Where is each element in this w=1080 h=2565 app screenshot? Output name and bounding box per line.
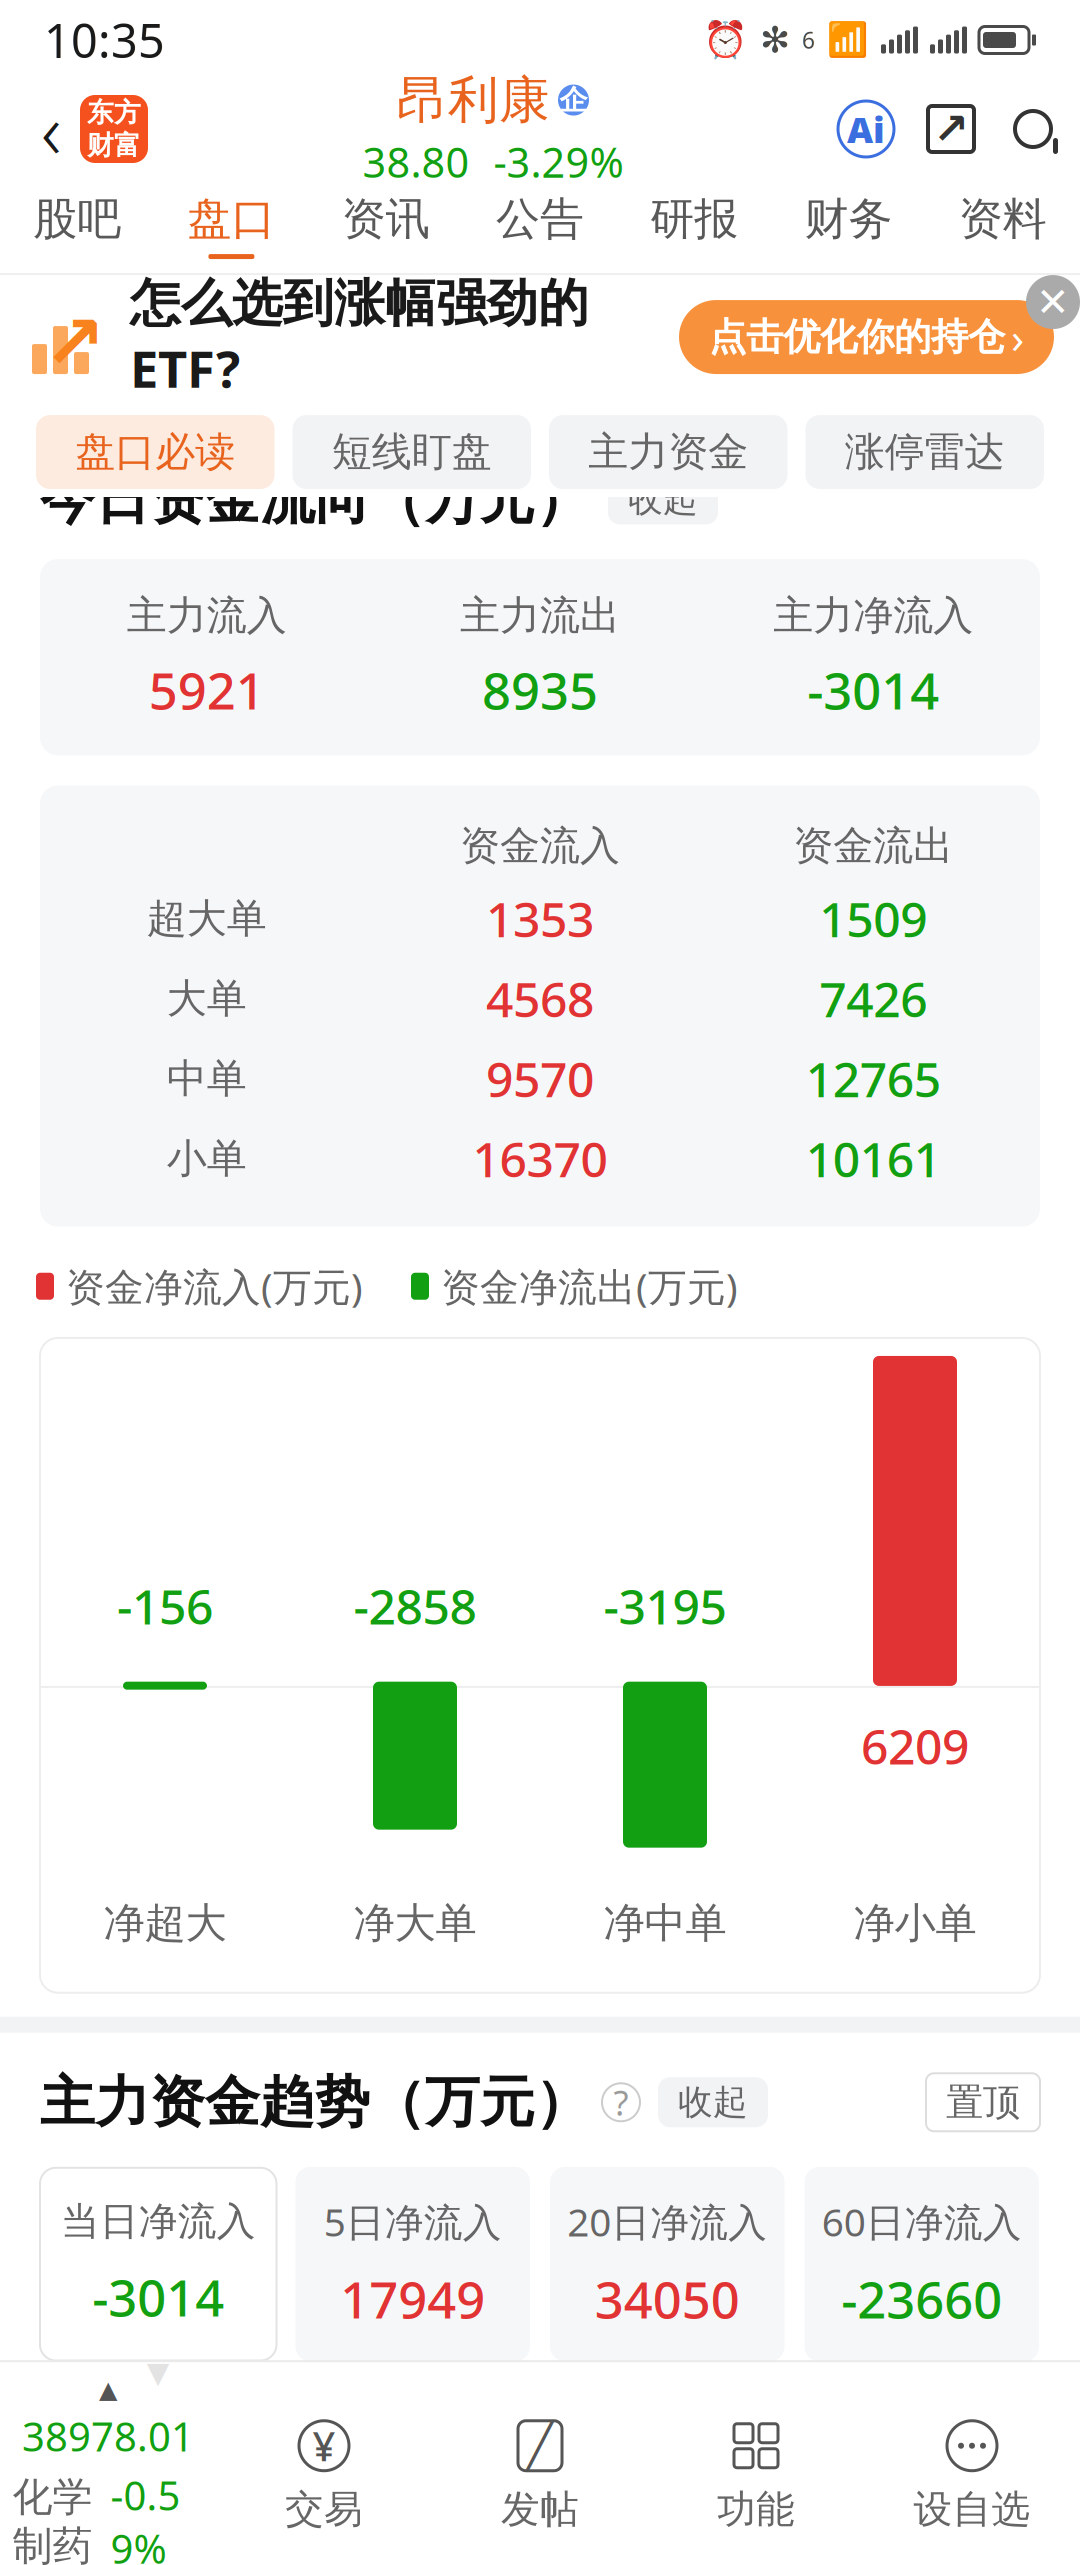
staticText (409, 2355, 417, 2394)
staticText: ▲ (99, 2376, 117, 2403)
staticText: 资金净流出(万元) (441, 1261, 738, 1312)
staticText: 4568 (486, 967, 594, 1030)
staticText: 资讯 (342, 192, 430, 246)
staticText: 当日净流入 (61, 2198, 256, 2245)
staticText: ▼ (147, 2356, 170, 2389)
staticText: 大单 (167, 974, 247, 1023)
staticText: ✻ (760, 20, 790, 60)
staticText: 财富 (87, 129, 141, 162)
button[interactable]: 涨停雷达 (805, 415, 1044, 489)
staticText: 净小单 (853, 1898, 976, 1949)
staticText: -156 (117, 1574, 213, 1638)
staticText: 16370 (472, 1127, 607, 1190)
button[interactable]: 东方财富 (80, 95, 148, 163)
button[interactable]: ╱ (432, 2418, 648, 2533)
staticText: 东方 (87, 96, 141, 129)
button[interactable]: 盘口必读 (36, 415, 274, 489)
staticText: ? (613, 2079, 628, 2125)
staticText: 资金净流入(万元) (66, 1261, 363, 1312)
staticText: 净超大 (103, 1898, 226, 1949)
staticText: 📶 (827, 21, 869, 59)
button[interactable]: 搜索 (1008, 104, 1058, 154)
button[interactable]: 60日净流入 (803, 2166, 1040, 2386)
button[interactable]: 收起 (658, 2077, 768, 2127)
staticText: 超大单 (147, 894, 267, 943)
staticText: 12765 (806, 1047, 941, 1110)
staticText: › (1011, 309, 1024, 365)
button[interactable]: 功能 (648, 2418, 864, 2533)
staticText: 今日资金流向（万元） (40, 466, 590, 533)
staticText: 短线盯盘 (332, 427, 492, 477)
staticText: ⏰ (703, 19, 748, 60)
button[interactable]: 20日净流入 (549, 2166, 785, 2386)
button[interactable]: AI 助手 (838, 101, 894, 157)
staticText: 资料 (959, 192, 1047, 246)
button[interactable]: 分享 (928, 106, 974, 152)
staticText: ‹ (41, 78, 61, 180)
staticText: 点击优化你的持仓 (709, 314, 1005, 360)
button[interactable]: 公告 (463, 178, 617, 273)
staticText: 涨停雷达 (845, 427, 1005, 477)
staticText: ╱ (527, 2421, 553, 2470)
staticText: -2858 (353, 1574, 476, 1638)
staticText: 38.80 (362, 134, 469, 189)
button[interactable]: 收起 (608, 474, 718, 524)
staticText: 主力资金 (588, 427, 748, 477)
staticText: 主力流入 (127, 591, 287, 640)
staticText: ↗ (933, 105, 969, 153)
button[interactable]: 设自选 (864, 2418, 1080, 2533)
button[interactable]: 当日净流入 (40, 2168, 276, 2385)
button[interactable]: 主力资金 (549, 415, 787, 489)
button[interactable]: 短线盯盘 (292, 415, 531, 489)
button[interactable]: 财务 (771, 178, 926, 273)
staticText: 公告 (496, 192, 584, 246)
button[interactable]: 关闭广告 (1026, 275, 1080, 329)
staticText: 盘口 (187, 192, 275, 246)
staticText: 资金流出 (793, 821, 953, 871)
staticText: 20日净流入 (567, 2196, 767, 2247)
staticText: 研报 (650, 192, 738, 246)
staticText: -3195 (603, 1574, 726, 1638)
staticText: 设自选 (913, 2486, 1030, 2533)
button[interactable]: 资讯 (309, 178, 463, 273)
button[interactable]: 研报 (617, 178, 771, 273)
staticText: -23660 (841, 2265, 1002, 2332)
staticText: 股吧 (33, 192, 121, 246)
staticText: 企 (559, 83, 587, 117)
staticText: ¥ (312, 2419, 335, 2472)
staticText: 净中单 (603, 1898, 726, 1949)
staticText (918, 2355, 926, 2394)
staticText: 收起 (628, 478, 698, 521)
button[interactable]: ¥ (216, 2418, 432, 2533)
button[interactable]: 返回 (22, 89, 80, 169)
staticText: 小单 (167, 1134, 247, 1183)
staticText: 主力资金趋势（万元） (40, 2069, 590, 2136)
staticText: 置顶 (946, 2079, 1020, 2125)
button[interactable]: 说明 (602, 2083, 640, 2121)
staticText: ↗ (43, 300, 106, 385)
staticText: 60日净流入 (822, 2196, 1022, 2247)
staticText: 资金流入 (460, 821, 620, 871)
staticText: 6 (802, 25, 815, 55)
staticText: 功能 (717, 2486, 795, 2533)
button[interactable]: 股吧 (0, 178, 154, 273)
staticText: 昂利康 (397, 69, 550, 131)
staticText: 净大单 (353, 1898, 476, 1949)
button[interactable]: ↗ (0, 275, 1080, 399)
staticText: 化学制药 (12, 2472, 92, 2565)
staticText: -0.59% (110, 2468, 180, 2565)
button[interactable]: ▲ (0, 2376, 216, 2565)
staticText: 主力流出 (460, 591, 620, 640)
staticText: 6209 (861, 1714, 969, 1778)
button[interactable]: 置顶 (926, 2073, 1040, 2131)
staticText (663, 2355, 671, 2394)
button[interactable]: 5日净流入 (294, 2166, 531, 2386)
staticText: 交易 (285, 2486, 363, 2533)
staticText: 1509 (819, 887, 927, 950)
staticText: 9570 (486, 1047, 594, 1110)
button[interactable]: 盘口 (154, 178, 309, 273)
staticText: 财务 (805, 192, 893, 246)
button[interactable]: 资料 (926, 178, 1080, 273)
staticText: 盘口必读 (75, 427, 235, 477)
staticText: 17949 (340, 2265, 485, 2332)
